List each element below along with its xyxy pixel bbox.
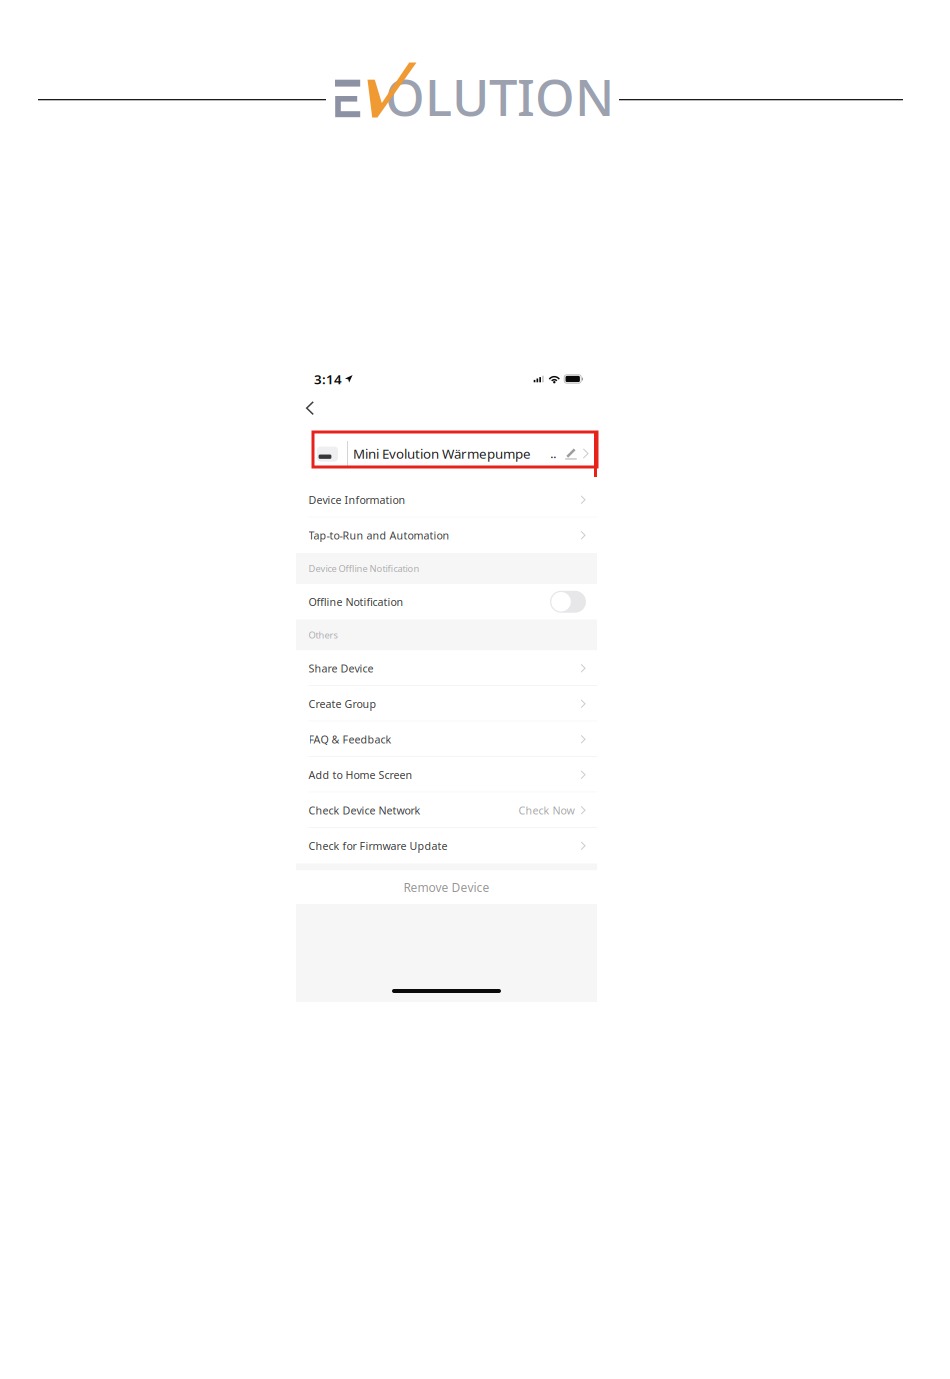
button[interactable]: Check for Firmware Update — [296, 828, 597, 863]
staticText: Tap-to-Run and Automation — [308, 528, 449, 542]
button[interactable]: Tap-to-Run and Automation — [296, 517, 597, 553]
staticText: Remove Device — [403, 879, 489, 895]
staticText: FAQ & Feedback — [308, 732, 391, 746]
button[interactable]: Remove Device — [296, 870, 597, 904]
staticText: Check for Firmware Update — [308, 839, 447, 853]
staticText: 3:14 — [314, 370, 342, 388]
button[interactable]: Check Device Network — [296, 792, 597, 828]
staticText: Offline Notification — [308, 595, 403, 609]
button[interactable]: Back — [296, 386, 326, 421]
staticText: Device Information — [308, 493, 405, 507]
staticText: .. — [550, 445, 556, 461]
button[interactable]: Offline Notification — [296, 584, 597, 619]
staticText: Check Now — [518, 803, 574, 817]
staticText: Create Group — [308, 697, 376, 711]
button[interactable]: Add to Home Screen — [296, 757, 597, 792]
button[interactable]: FAQ & Feedback — [296, 721, 597, 757]
button[interactable]: Share Device — [296, 650, 597, 686]
button[interactable]: Device Information — [296, 482, 597, 517]
staticText: Check Device Network — [308, 803, 420, 817]
staticText: Device Offline Notification — [308, 562, 419, 575]
staticText: Mini Evolution Wärmepumpe — [353, 445, 531, 462]
button[interactable]: Create Group — [296, 686, 597, 721]
staticText: Add to Home Screen — [308, 768, 412, 782]
staticText: OLUTION — [385, 63, 614, 130]
staticText: Share Device — [308, 661, 373, 675]
button[interactable]: Mini Evolution Wärmepumpe — [296, 437, 597, 470]
staticText: Others — [308, 629, 337, 641]
